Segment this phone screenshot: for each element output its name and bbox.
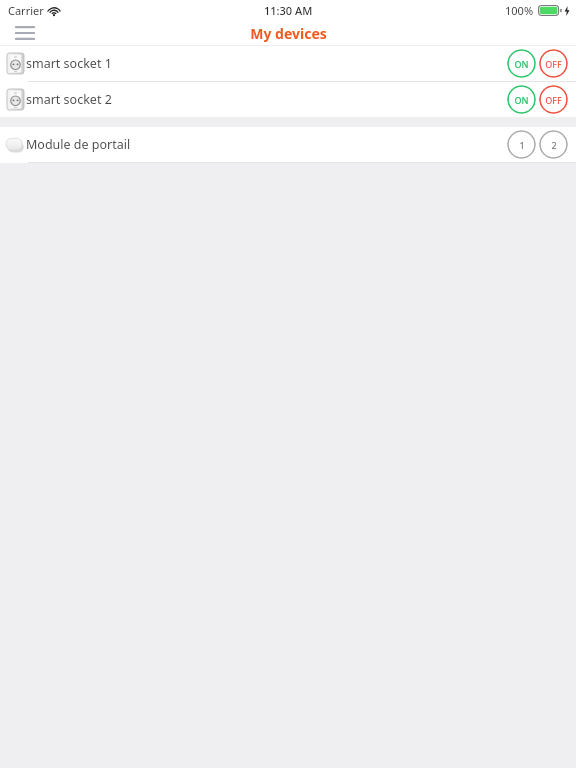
- staticText: smart socket 2: [26, 91, 112, 108]
- button[interactable]: Turn on: [507, 85, 536, 114]
- staticText: smart socket 1: [26, 55, 112, 72]
- staticText: 11:30 AM: [264, 3, 313, 18]
- staticText: OFF: [545, 58, 562, 70]
- button[interactable]: Open menu: [6, 20, 44, 46]
- button[interactable]: Turn on: [507, 49, 536, 78]
- staticText: Module de portail: [26, 136, 131, 153]
- button[interactable]: Channel 2: [539, 130, 568, 159]
- button[interactable]: Module de portail: [0, 127, 576, 162]
- button[interactable]: Turn off: [539, 85, 568, 114]
- button[interactable]: smart socket 1: [0, 46, 576, 81]
- button[interactable]: smart socket 2: [0, 82, 576, 117]
- staticText: 100%: [505, 3, 534, 18]
- staticText: 1: [519, 139, 525, 151]
- button[interactable]: Channel 1: [507, 130, 536, 159]
- staticText: 2: [551, 139, 557, 151]
- staticText: My devices: [250, 24, 327, 43]
- button[interactable]: Turn off: [539, 49, 568, 78]
- staticText: OFF: [545, 94, 562, 106]
- staticText: Carrier: [8, 3, 44, 18]
- staticText: ON: [514, 94, 529, 106]
- staticText: ON: [514, 58, 529, 70]
